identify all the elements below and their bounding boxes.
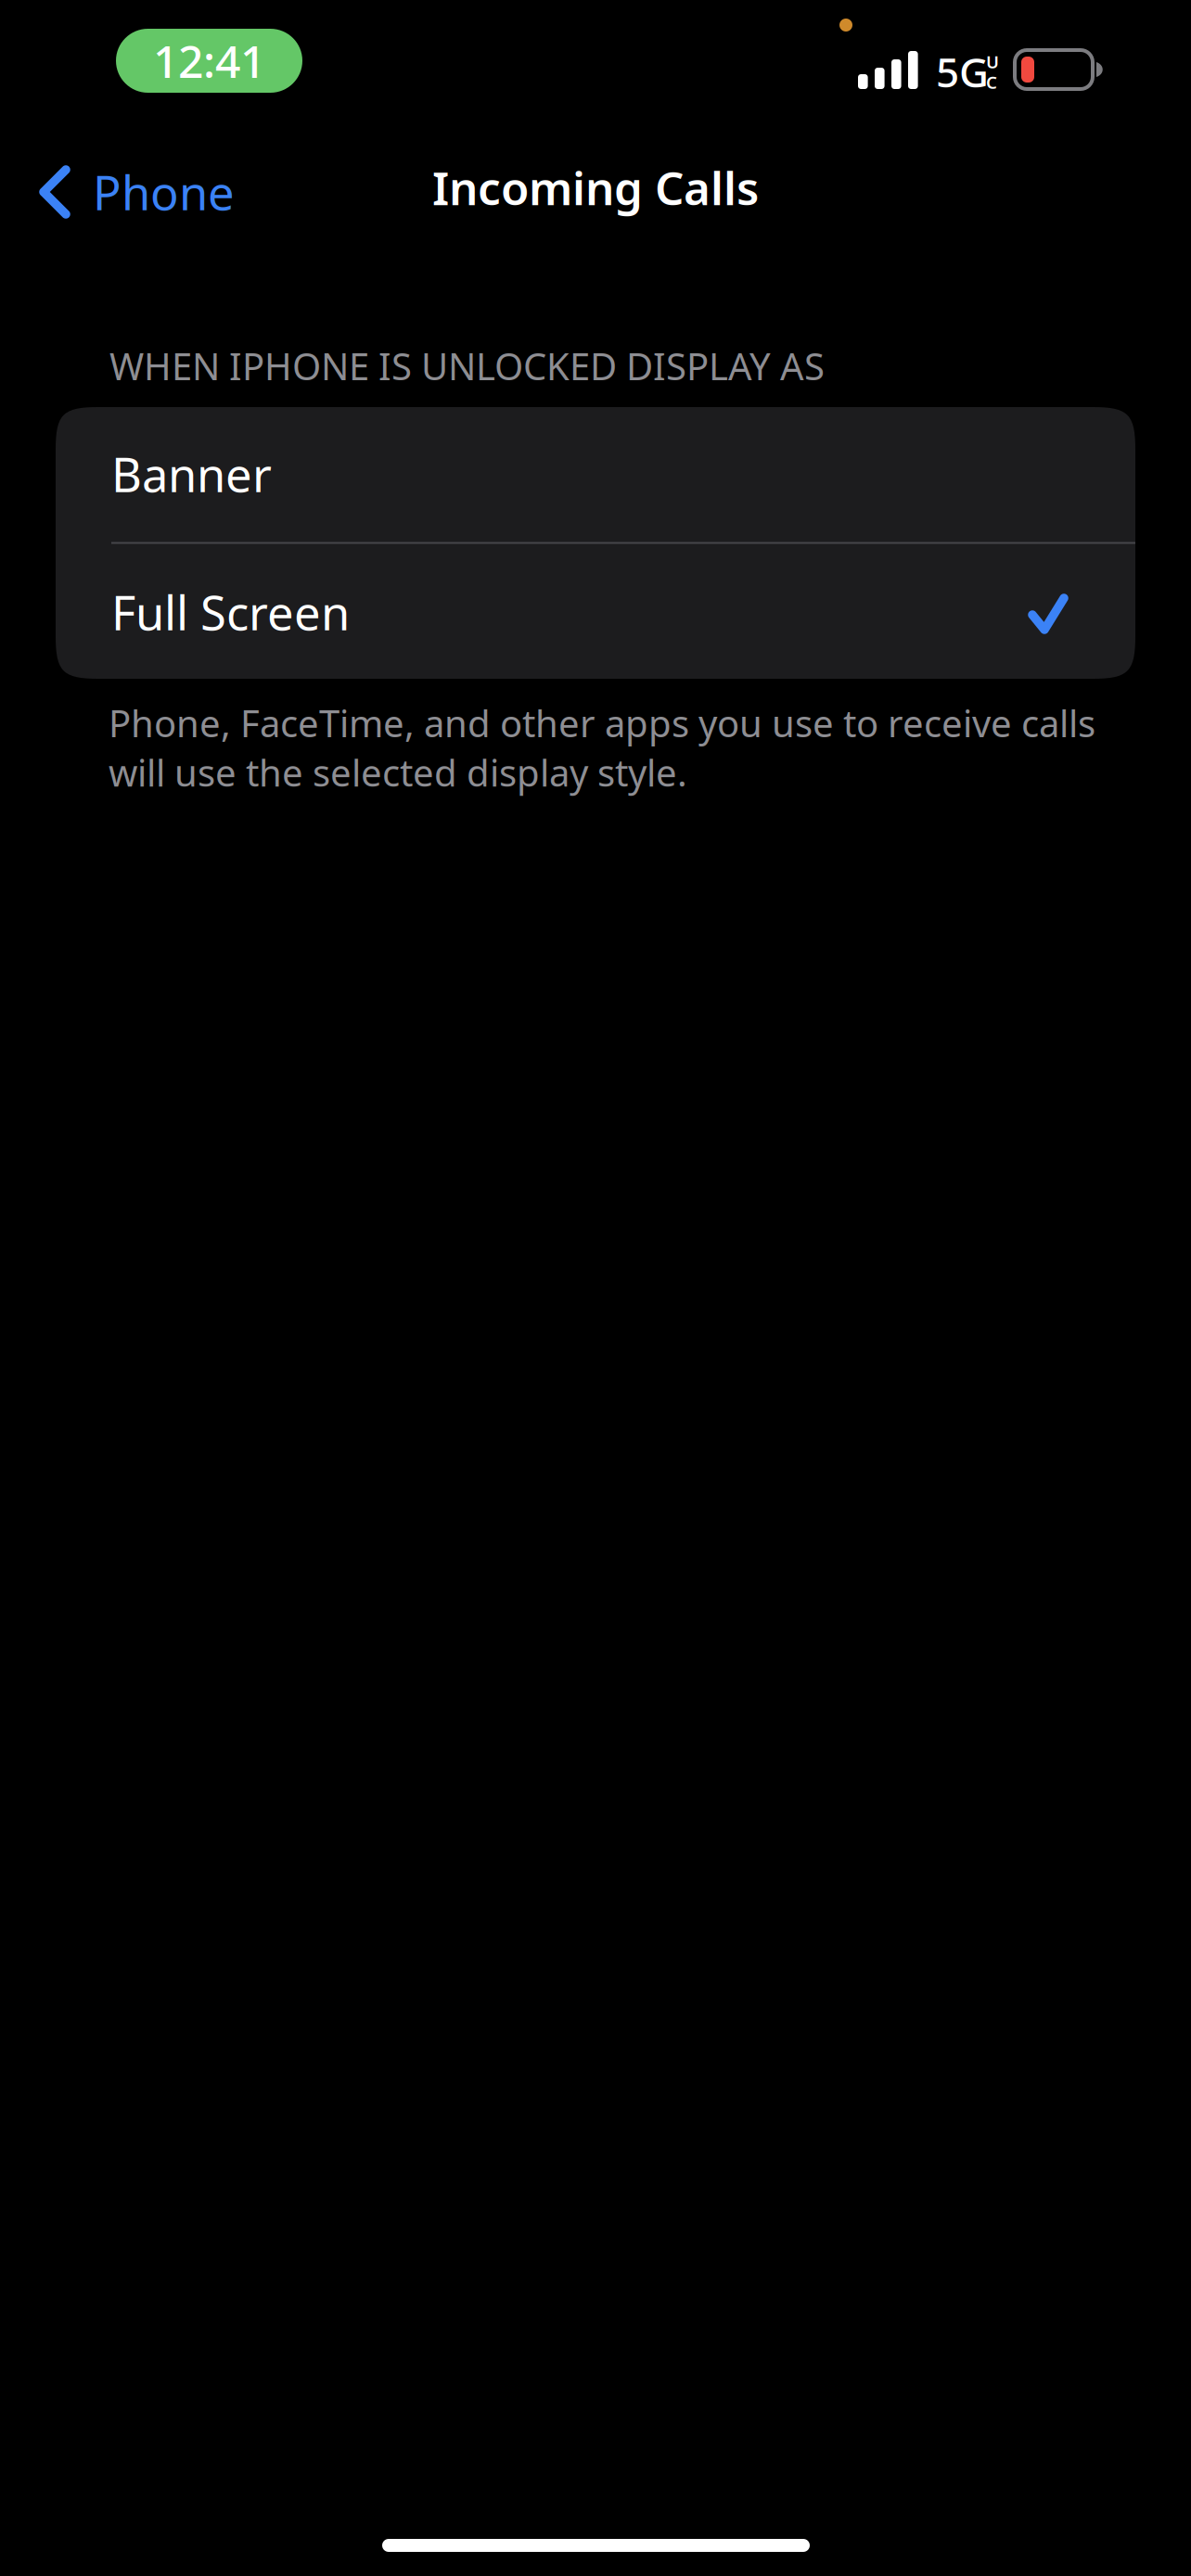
staticText: Full Screen <box>111 581 350 643</box>
staticText: Banner <box>111 443 272 505</box>
staticText: U <box>986 50 999 73</box>
staticText: WHEN IPHONE IS UNLOCKED DISPLAY AS <box>109 341 825 390</box>
staticText: Phone <box>93 161 235 223</box>
button[interactable]: Full Screen <box>56 544 1135 680</box>
staticText: Incoming Calls <box>432 157 759 218</box>
staticText: 5G <box>936 45 989 99</box>
staticText: Phone, FaceTime, and other apps you use … <box>109 698 1095 797</box>
staticText: 12:41 <box>153 31 265 90</box>
staticText: C <box>986 70 997 93</box>
button[interactable]: Banner <box>56 406 1135 542</box>
button[interactable]: Back to Phone <box>0 131 261 253</box>
